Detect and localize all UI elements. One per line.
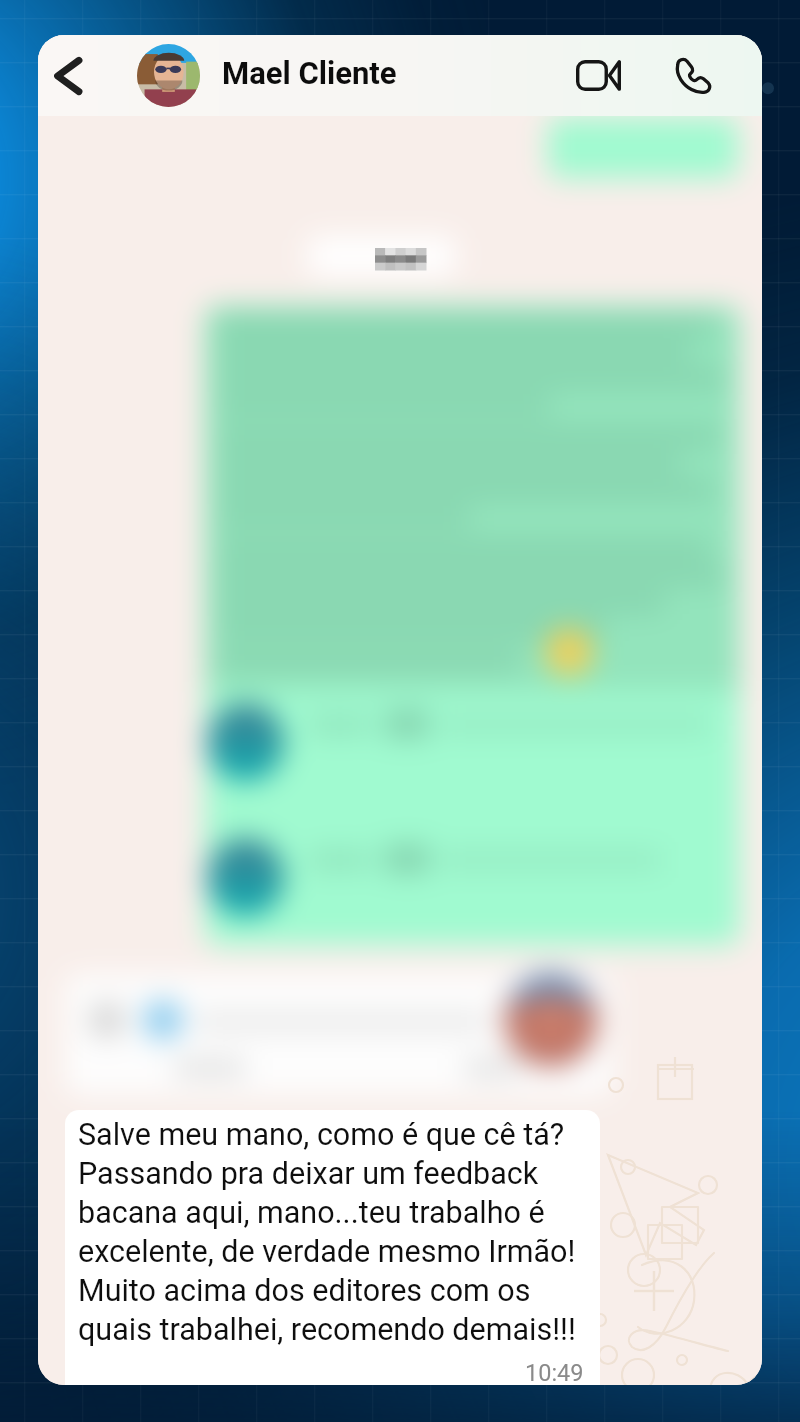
- staticText: 10:49: [525, 1359, 584, 1385]
- button[interactable]: Video call: [564, 41, 632, 109]
- staticText: Salve meu mano, como é que cê tá? Passan…: [78, 1117, 576, 1347]
- staticText: Mael Cliente: [222, 55, 397, 91]
- button[interactable]: Voice call: [659, 41, 727, 109]
- button[interactable]: Back: [40, 35, 96, 116]
